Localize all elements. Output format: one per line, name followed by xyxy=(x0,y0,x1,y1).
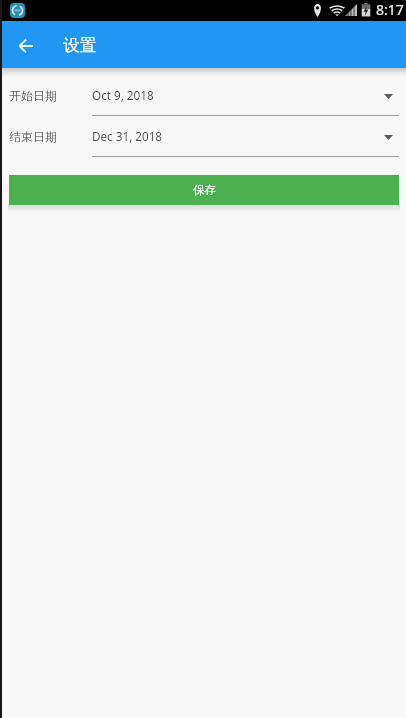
button[interactable]: 结束日期 xyxy=(0,131,406,164)
staticText: Dec 31, 2018 xyxy=(92,128,163,144)
staticText: Oct 9, 2018 xyxy=(92,87,154,103)
staticText: 开始日期 xyxy=(9,88,57,103)
staticText: 设置 xyxy=(63,35,97,56)
staticText: 8:17 xyxy=(376,0,404,19)
staticText: 保存 xyxy=(193,183,216,197)
button[interactable]: Back xyxy=(9,22,43,69)
button[interactable]: 保存 xyxy=(9,175,399,205)
button[interactable]: 开始日期 xyxy=(0,90,406,123)
staticText: 结束日期 xyxy=(9,129,57,144)
